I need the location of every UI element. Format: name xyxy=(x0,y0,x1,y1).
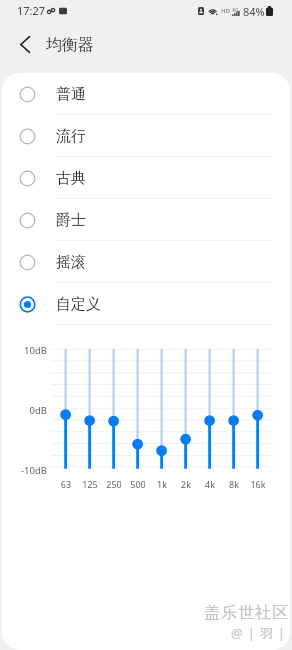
staticText: 0dB xyxy=(15,404,47,417)
staticText: 84% xyxy=(243,4,265,19)
staticText: 250 xyxy=(102,478,126,490)
button[interactable]: 摇滚 xyxy=(2,241,290,283)
button[interactable]: Back xyxy=(8,21,42,67)
button[interactable]: 流行 xyxy=(2,115,290,157)
staticText: HD xyxy=(221,7,230,15)
staticText: 古典 xyxy=(56,169,86,188)
staticText: 普通 xyxy=(56,85,86,104)
staticText: @ | 羽 | xyxy=(231,624,286,642)
staticText: 2k xyxy=(174,478,198,490)
staticText: 10dB xyxy=(15,344,47,357)
staticText: 8k xyxy=(222,478,246,490)
button[interactable]: 爵士 xyxy=(2,199,290,241)
staticText: 盖乐世社区 xyxy=(204,603,290,623)
staticText: 流行 xyxy=(56,127,86,146)
staticText: -10dB xyxy=(15,464,47,477)
staticText: 125 xyxy=(78,478,102,490)
staticText: 4k xyxy=(198,478,222,490)
button[interactable]: 自定义 xyxy=(2,283,290,325)
button[interactable]: 普通 xyxy=(2,73,290,115)
staticText: 17:27 xyxy=(17,3,46,18)
staticText: 500 xyxy=(126,478,150,490)
button[interactable]: 古典 xyxy=(2,157,290,199)
staticText: 摇滚 xyxy=(56,253,86,272)
staticText: 1k xyxy=(150,478,174,490)
staticText: 63 xyxy=(54,478,78,490)
staticText: 4G xyxy=(232,7,239,14)
staticText: 16k xyxy=(246,478,270,490)
staticText: 自定义 xyxy=(56,295,101,314)
staticText: 均衡器 xyxy=(46,35,94,55)
staticText: 爵士 xyxy=(56,211,86,230)
